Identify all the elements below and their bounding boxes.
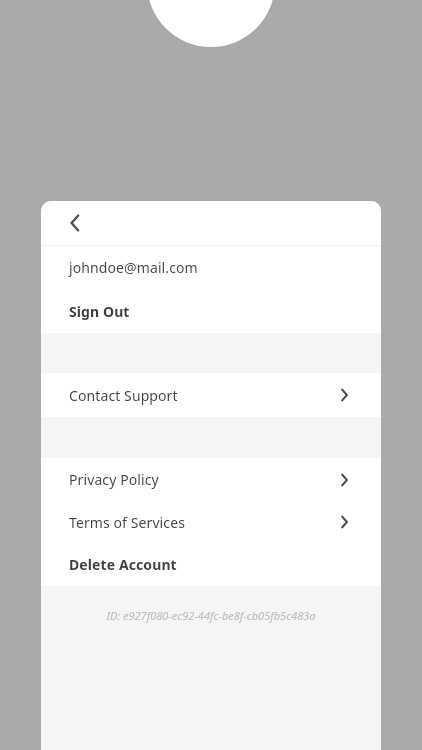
button[interactable]: Terms of Services [41, 501, 381, 543]
staticText: Delete Account [69, 555, 353, 574]
button[interactable]: Sign Out [41, 289, 381, 333]
staticText: Privacy Policy [69, 470, 335, 489]
staticText: Contact Support [69, 386, 335, 405]
staticText: Sign Out [69, 302, 353, 321]
button[interactable]: johndoe@mail.com [41, 246, 381, 289]
staticText: ID: e927f080-ec92-44fc-be8f-cb05fb5c483a [41, 608, 381, 623]
button[interactable]: Contact Support [41, 373, 381, 417]
button[interactable]: Back [59, 206, 93, 240]
button[interactable]: Privacy Policy [41, 458, 381, 501]
button[interactable]: Delete Account [41, 543, 381, 586]
staticText: Terms of Services [69, 513, 335, 532]
staticText: johndoe@mail.com [69, 258, 353, 277]
